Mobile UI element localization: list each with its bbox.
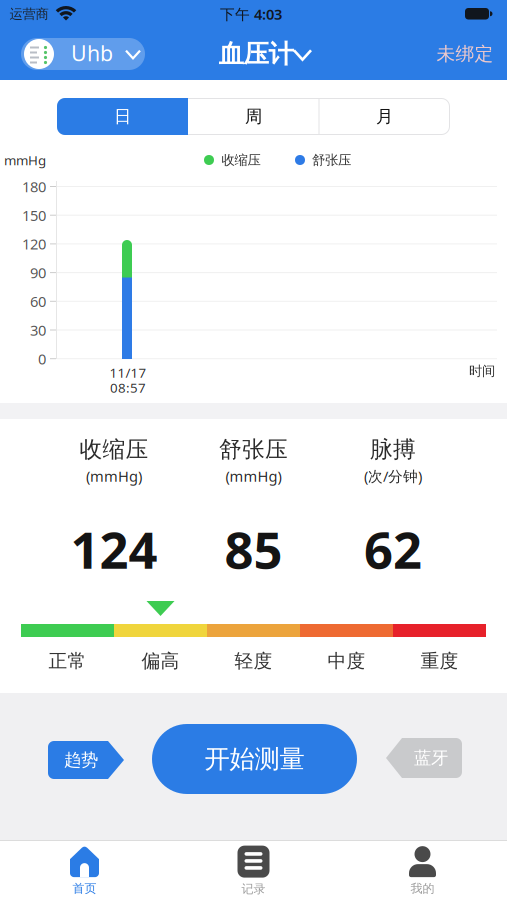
staticText: 收缩压	[79, 436, 148, 463]
staticText: 正常	[48, 649, 86, 672]
staticText: 0	[38, 349, 46, 368]
staticText: 舒张压	[312, 152, 351, 168]
button[interactable]: 未绑定	[436, 42, 493, 65]
staticText: 舒张压	[219, 436, 288, 463]
button[interactable]: 日	[57, 98, 188, 135]
staticText: 周	[245, 106, 262, 127]
staticText: 时间	[469, 363, 495, 379]
staticText: 124	[70, 515, 157, 583]
button[interactable]: 首页	[24, 843, 144, 899]
staticText: 偏高	[141, 649, 179, 672]
staticText: 11/17	[109, 364, 146, 381]
button[interactable]: 我的	[362, 843, 482, 899]
staticText: 85	[224, 515, 282, 583]
staticText: 62	[364, 515, 422, 583]
staticText: 未绑定	[436, 42, 493, 65]
staticText: (次/分钟)	[364, 466, 422, 486]
staticText: 脉搏	[370, 436, 416, 463]
staticText: 08:57	[110, 379, 146, 396]
staticText: 轻度	[234, 649, 272, 672]
staticText: 记录	[241, 882, 265, 896]
button[interactable]: 月	[324, 98, 444, 135]
staticText: 60	[30, 292, 46, 311]
button[interactable]: 血压计	[207, 34, 317, 74]
staticText: 150	[22, 205, 46, 225]
staticText: (mmHg)	[225, 466, 281, 486]
staticText: 趋势	[64, 749, 98, 771]
staticText: Uhb	[71, 39, 113, 67]
staticText: 运营商	[9, 6, 48, 22]
staticText: 首页	[72, 881, 96, 896]
staticText: 下午 4:03	[220, 4, 282, 24]
staticText: 重度	[420, 649, 458, 672]
staticText: 血压计	[218, 38, 293, 69]
button[interactable]: 周	[193, 98, 313, 135]
button[interactable]: 开始测量	[152, 724, 357, 794]
staticText: 月	[376, 106, 393, 127]
staticText: 180	[22, 177, 46, 196]
staticText: 120	[22, 234, 46, 254]
button[interactable]: 趋势	[48, 741, 124, 779]
button[interactable]: Uhb	[21, 38, 145, 70]
staticText: 90	[30, 263, 46, 282]
staticText: 中度	[327, 649, 365, 672]
staticText: 日	[114, 106, 131, 127]
button[interactable]: 蓝牙	[386, 738, 462, 778]
staticText: mmHg	[4, 151, 46, 169]
staticText: 收缩压	[221, 152, 260, 168]
staticText: 30	[30, 320, 46, 340]
staticText: (mmHg)	[86, 466, 142, 486]
button[interactable]: 记录	[193, 843, 313, 899]
staticText: 我的	[410, 881, 434, 896]
staticText: 蓝牙	[414, 747, 448, 769]
staticText: 开始测量	[204, 743, 304, 774]
